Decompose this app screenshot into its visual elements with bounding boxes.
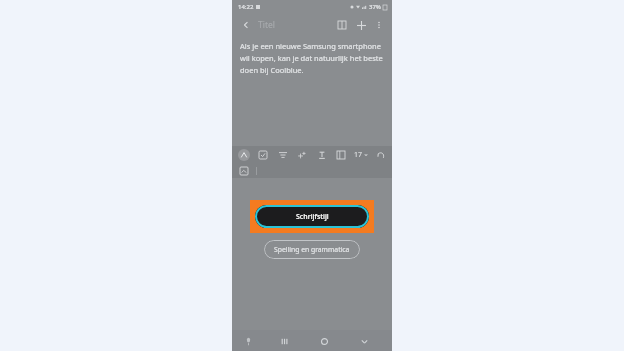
- staticText: 37%: [369, 3, 381, 11]
- staticText: Schrijfstijl: [296, 212, 329, 222]
- staticText: Spelling en grammatica: [274, 245, 350, 254]
- button[interactable]: Back: [238, 17, 254, 33]
- button[interactable]: Stickers: [295, 148, 308, 161]
- button[interactable]: Voice input: [240, 333, 256, 349]
- staticText: Titel: [258, 19, 275, 31]
- button[interactable]: Checklist: [256, 148, 269, 161]
- button[interactable]: 17: [354, 150, 368, 160]
- button[interactable]: Schrijfstijl: [255, 205, 369, 228]
- button[interactable]: Back: [356, 333, 372, 349]
- button[interactable]: Table: [334, 148, 347, 161]
- button[interactable]: Add: [353, 17, 369, 33]
- staticText: 14:22: [238, 3, 254, 11]
- button[interactable]: View mode: [334, 17, 350, 33]
- button[interactable]: Text format: [315, 148, 328, 161]
- button[interactable]: More options: [372, 18, 386, 32]
- button[interactable]: List: [276, 148, 289, 161]
- button[interactable]: Spelling en grammatica: [264, 240, 360, 259]
- button[interactable]: Insert image: [237, 164, 250, 177]
- button[interactable]: Pen style: [237, 148, 250, 161]
- button[interactable]: Home: [316, 333, 332, 349]
- staticText: Als je een nieuwe Samsung smartphone wil…: [240, 41, 384, 75]
- button[interactable]: Recents: [276, 333, 292, 349]
- staticText: 17: [354, 150, 363, 160]
- button[interactable]: Undo: [374, 148, 387, 161]
